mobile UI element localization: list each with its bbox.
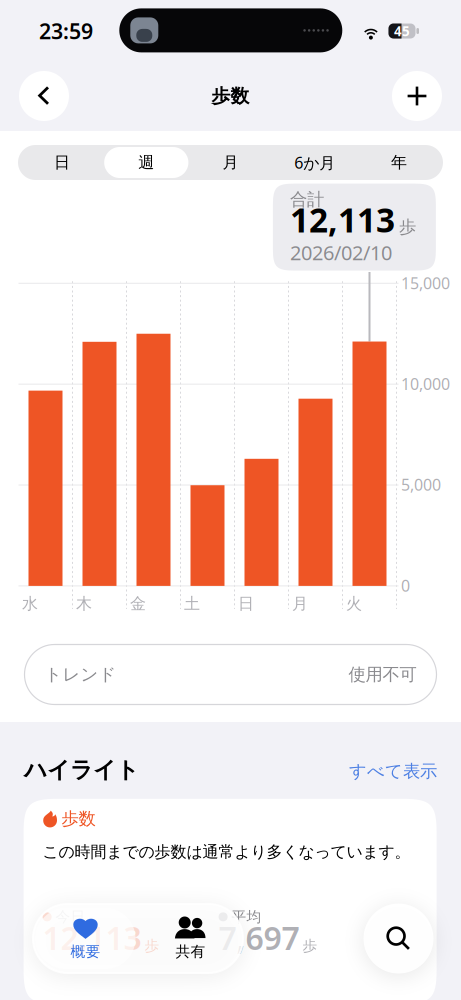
staticText: 日 bbox=[238, 594, 254, 614]
staticText: 0 bbox=[401, 575, 410, 596]
staticText: 週 bbox=[138, 153, 154, 172]
button[interactable]: 戻る bbox=[19, 71, 69, 121]
button[interactable]: 月 bbox=[188, 145, 273, 180]
button[interactable]: 追加 bbox=[392, 71, 442, 121]
staticText: 6か月 bbox=[294, 152, 335, 173]
staticText: 歩 bbox=[399, 216, 416, 238]
staticText: 15,000 bbox=[401, 272, 450, 293]
staticText: 歩数 bbox=[62, 808, 96, 829]
staticText: 12,113 bbox=[43, 916, 142, 959]
button[interactable]: 週 bbox=[104, 145, 188, 180]
staticText: 歩数 bbox=[211, 84, 249, 107]
staticText: 木 bbox=[76, 594, 92, 614]
staticText: 水 bbox=[22, 594, 38, 614]
staticText: 23:59 bbox=[39, 17, 93, 45]
staticText: 45 bbox=[394, 22, 410, 40]
staticText: 10,000 bbox=[401, 373, 450, 394]
button[interactable]: 共有 bbox=[138, 904, 243, 973]
staticText: 合計 bbox=[290, 189, 324, 210]
staticText: 2026/02/10 bbox=[290, 239, 392, 266]
button[interactable]: 歩数 bbox=[24, 799, 437, 1000]
staticText: 7,697 bbox=[219, 916, 300, 959]
staticText: 使用不可 bbox=[348, 664, 416, 685]
staticText: 土 bbox=[184, 594, 200, 614]
staticText: 月 bbox=[222, 153, 238, 172]
staticText: 年 bbox=[391, 153, 407, 172]
button[interactable]: 概要 bbox=[33, 904, 138, 973]
staticText: 今日 bbox=[56, 908, 86, 926]
staticText: 平均 bbox=[232, 908, 262, 926]
staticText: 日 bbox=[54, 153, 70, 172]
button[interactable]: すべて表示 bbox=[349, 761, 437, 784]
staticText: この時間までの歩数は通常より多くなっています。 bbox=[43, 842, 411, 862]
button[interactable]: 検索 bbox=[363, 903, 433, 973]
staticText: トレンド bbox=[44, 664, 116, 685]
button[interactable]: 年 bbox=[357, 145, 441, 180]
button[interactable]: トレンド bbox=[24, 644, 436, 704]
staticText: 月 bbox=[292, 594, 308, 614]
staticText: 火 bbox=[346, 594, 362, 614]
staticText: 概要 bbox=[70, 942, 100, 960]
staticText: 共有 bbox=[175, 942, 205, 960]
staticText: ハイライト bbox=[24, 756, 139, 784]
button[interactable]: 日 bbox=[20, 145, 104, 180]
staticText: 歩 bbox=[145, 937, 160, 955]
staticText: 歩 bbox=[303, 937, 318, 955]
staticText: 12,113 bbox=[290, 197, 395, 242]
staticText: 金 bbox=[130, 594, 146, 614]
staticText: すべて表示 bbox=[349, 761, 437, 782]
button[interactable]: 6か月 bbox=[273, 145, 357, 180]
staticText: 5,000 bbox=[401, 474, 441, 495]
